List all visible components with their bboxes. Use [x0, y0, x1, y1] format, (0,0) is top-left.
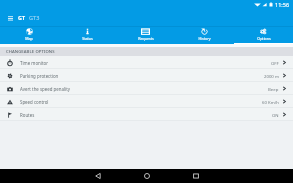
- button[interactable]: Back: [91, 169, 105, 183]
- button[interactable]: Menu: [4, 11, 17, 24]
- staticText: Avert the speed penality: [20, 86, 71, 92]
- button[interactable]: Options: [234, 26, 293, 44]
- staticText: Status: [82, 36, 93, 41]
- staticText: 2000 m: [264, 73, 279, 79]
- staticText: Time monitor: [20, 60, 48, 66]
- staticText: 11:56: [275, 1, 290, 8]
- staticText: Beep: [268, 86, 279, 92]
- button[interactable]: Requests: [116, 26, 175, 44]
- button[interactable]: Home: [140, 169, 154, 183]
- staticText: Requests: [138, 36, 154, 41]
- staticText: Speed control: [20, 99, 49, 105]
- button[interactable]: Status: [58, 26, 116, 44]
- staticText: OFF: [271, 60, 279, 66]
- staticText: Parking protection: [20, 73, 59, 79]
- staticText: Options: [257, 36, 271, 41]
- staticText: ON: [272, 112, 279, 118]
- staticText: Routes: [20, 112, 35, 118]
- button[interactable]: Parking protection: [0, 69, 293, 82]
- button[interactable]: Time monitor: [0, 56, 293, 69]
- staticText: GT3: [29, 14, 40, 22]
- staticText: Map: [25, 36, 33, 41]
- button[interactable]: Avert the speed penality: [0, 82, 293, 95]
- staticText: GT: [18, 14, 26, 21]
- button[interactable]: Recents: [189, 169, 203, 183]
- staticText: 60 Km/h: [262, 99, 279, 105]
- button[interactable]: History: [175, 26, 234, 44]
- button[interactable]: Speed control: [0, 95, 293, 108]
- staticText: History: [198, 36, 211, 41]
- button[interactable]: Routes: [0, 108, 293, 121]
- button[interactable]: Map: [0, 26, 58, 44]
- staticText: CHANGEABLE OPTIONS: [6, 49, 55, 55]
